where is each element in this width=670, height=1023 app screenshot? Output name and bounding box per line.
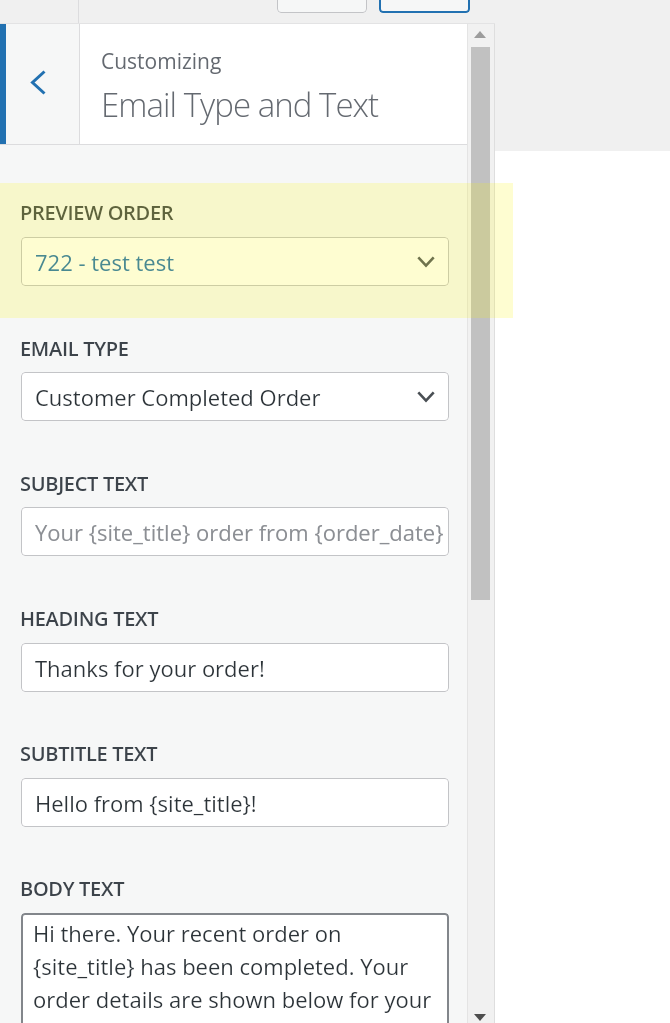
- staticText: 722 - test test: [35, 247, 175, 277]
- button[interactable]: Back: [6, 24, 79, 145]
- button[interactable]: Hi there. Your recent order on {site_tit…: [21, 913, 449, 1023]
- staticText: Thanks for your order!: [35, 653, 265, 683]
- staticText: BODY TEXT: [20, 875, 125, 902]
- staticText: Customer Completed Order: [35, 382, 321, 412]
- button[interactable]: Your {site_title} order from {order_date…: [21, 507, 449, 556]
- staticText: Customizing: [101, 47, 222, 76]
- button[interactable]: Scroll down: [468, 1001, 495, 1023]
- button[interactable]: Customer Completed Order: [21, 372, 449, 421]
- staticText: Hello from {site_title}!: [35, 788, 257, 818]
- staticText: Your {site_title} order from {order_date…: [35, 517, 444, 547]
- staticText: SUBJECT TEXT: [20, 470, 148, 497]
- button[interactable]: Hello from {site_title}!: [21, 778, 449, 827]
- button[interactable]: Thanks for your order!: [21, 643, 449, 692]
- button[interactable]: Scroll up: [468, 24, 495, 47]
- button[interactable]: 722 - test test: [21, 237, 449, 286]
- button[interactable]: Cancel: [277, 0, 367, 13]
- staticText: EMAIL TYPE: [20, 335, 129, 362]
- button[interactable]: Publish: [379, 0, 470, 13]
- staticText: PREVIEW ORDER: [20, 199, 174, 226]
- staticText: SUBTITLE TEXT: [20, 740, 158, 767]
- staticText: Email Type and Text: [101, 82, 379, 127]
- staticText: Hi there. Your recent order on {site_tit…: [33, 918, 435, 1023]
- staticText: HEADING TEXT: [20, 605, 159, 632]
